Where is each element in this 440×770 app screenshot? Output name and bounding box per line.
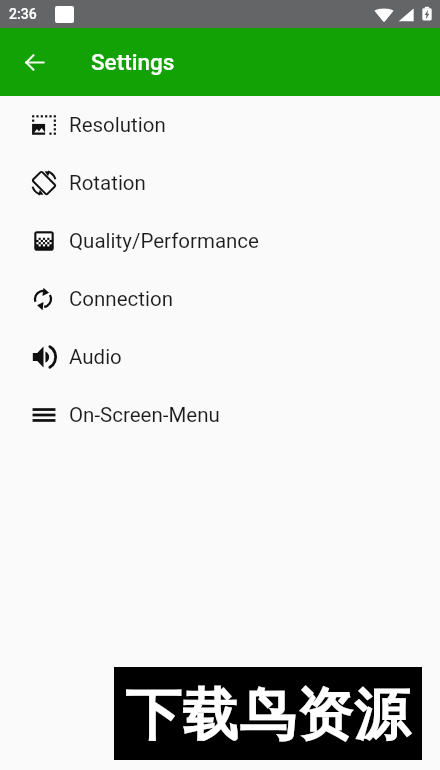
staticText: On-Screen-Menu	[69, 403, 220, 427]
button[interactable]: Resolution	[0, 96, 440, 154]
button[interactable]: Rotation	[0, 154, 440, 212]
staticText: Audio	[69, 345, 122, 369]
staticText: Rotation	[69, 171, 146, 195]
staticText: 下载鸟资源	[125, 680, 411, 751]
button[interactable]: On-Screen-Menu	[0, 386, 440, 444]
staticText: 2:36	[9, 6, 37, 22]
staticText: Settings	[91, 49, 175, 75]
staticText: Quality/Performance	[69, 229, 259, 253]
button[interactable]: Quality/Performance	[0, 212, 440, 270]
button[interactable]: Connection	[0, 270, 440, 328]
staticText: Connection	[69, 287, 173, 311]
button[interactable]: Back	[14, 42, 54, 82]
staticText: Resolution	[69, 113, 166, 137]
button[interactable]: Audio	[0, 328, 440, 386]
